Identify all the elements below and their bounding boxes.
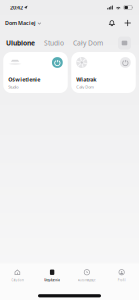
staticText: Cały Dom [73, 39, 103, 47]
button[interactable]: Powiadomienia [109, 19, 115, 26]
staticText: Cały Dom [76, 84, 94, 89]
button[interactable]: Profil [104, 269, 139, 282]
staticText: Studio [8, 84, 18, 89]
staticText: Ulubione [6, 39, 35, 47]
button[interactable]: Dodaj [124, 19, 131, 26]
staticText: Automatyzacje [78, 278, 96, 282]
staticText: Dom Maciej [5, 19, 36, 27]
button[interactable]: Urządzenia [35, 269, 70, 282]
button[interactable]: Ulubione [6, 39, 35, 47]
button[interactable]: Automatyzacje [69, 269, 104, 282]
button[interactable]: Układ [118, 36, 131, 49]
staticText: Oświetlenie [8, 76, 40, 83]
staticText: Wiatrak [76, 76, 96, 83]
button[interactable]: Dom Maciej [0, 17, 41, 28]
button[interactable]: Studio [44, 39, 64, 47]
staticText: Profil [118, 278, 126, 282]
staticText: 20:42 [10, 4, 23, 11]
staticText: Cały dom [11, 278, 23, 282]
button[interactable]: Cały Dom [73, 39, 103, 47]
button[interactable]: Oświetlenie [3, 52, 68, 93]
staticText: Urządzenia [44, 278, 60, 282]
staticText: Studio [44, 39, 64, 47]
button[interactable]: Wiatrak [71, 52, 136, 93]
button[interactable]: Cały dom [0, 269, 35, 282]
